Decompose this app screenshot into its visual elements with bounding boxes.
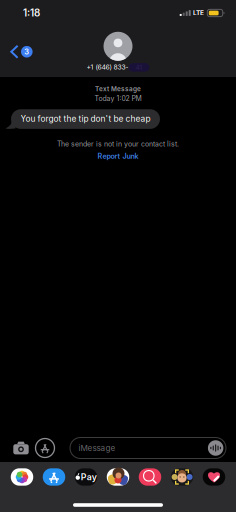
button[interactable]: Report Junk xyxy=(87,150,148,162)
staticText: You forgot the tip don't be cheap xyxy=(20,114,150,124)
staticText: 41 xyxy=(135,63,142,71)
staticText: iMessage xyxy=(78,443,115,453)
button[interactable]: Music xyxy=(139,468,161,486)
staticText: The sender is not in your contact list. xyxy=(57,140,179,148)
button[interactable]: Memoji xyxy=(171,468,193,486)
staticText: 3 xyxy=(24,47,29,56)
button[interactable]: Apple Pay xyxy=(75,468,97,486)
button[interactable]: Fitness xyxy=(203,468,225,486)
staticText: Pay xyxy=(81,472,97,482)
button[interactable]: Photos xyxy=(11,468,33,486)
staticText: LTE xyxy=(193,9,204,17)
button[interactable]: App Store xyxy=(43,468,65,486)
staticText: Today 1:02 PM xyxy=(94,94,141,103)
button[interactable]: Photo suggestions xyxy=(107,468,129,486)
button[interactable]: Camera xyxy=(9,437,33,459)
staticText: Report Junk xyxy=(97,152,138,160)
button[interactable]: Back, 3 unread xyxy=(0,34,41,70)
staticText: +1 (646) 833- xyxy=(86,63,128,71)
staticText: 1:18 xyxy=(23,7,40,19)
button[interactable]: Apps xyxy=(33,437,57,459)
button[interactable]: Message field xyxy=(70,437,226,458)
staticText: Text Message xyxy=(95,85,141,93)
